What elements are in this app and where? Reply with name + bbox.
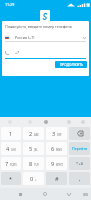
staticText: #: [55, 175, 59, 182]
staticText: 4: [6, 145, 10, 152]
button[interactable]: ,: [69, 172, 90, 185]
staticText: 9: [51, 160, 55, 167]
staticText: +7: [15, 50, 20, 55]
staticText: ПРОДОЛЖИТЬ: [60, 63, 83, 67]
staticText: ,: [79, 175, 81, 182]
button[interactable]: 4: [1, 142, 21, 155]
staticText: 5: [29, 145, 33, 152]
staticText: *+#: [76, 161, 84, 166]
button[interactable]: Home: [41, 190, 49, 198]
button[interactable]: 2: [23, 127, 44, 140]
button[interactable]: Backspace: [69, 127, 90, 140]
button[interactable]: Settings: [43, 119, 48, 124]
button[interactable]: Switch keyboard: [81, 190, 89, 198]
button[interactable]: +7: [2, 48, 89, 57]
staticText: JKL: [34, 148, 38, 152]
staticText: WXYZ: [56, 163, 63, 167]
staticText: PQRS: [10, 163, 17, 167]
button[interactable]: 9: [46, 157, 67, 170]
button[interactable]: 3: [46, 127, 67, 140]
button[interactable]: GIF: [27, 119, 32, 124]
staticText: 11:29: [5, 2, 15, 7]
staticText: Пожалуйста, введите номер телефона: [5, 24, 72, 29]
button[interactable]: 8: [23, 157, 44, 170]
staticText: Перейти: [72, 146, 88, 151]
button[interactable]: *+#: [69, 157, 90, 170]
staticText: +: [35, 178, 37, 182]
staticText: 3: [52, 130, 56, 137]
staticText: MNO: [56, 148, 63, 152]
staticText: TUV: [34, 163, 39, 167]
button[interactable]: Search: [66, 119, 71, 124]
staticText: 0: [30, 175, 34, 182]
button[interactable]: 5: [23, 142, 44, 155]
staticText: GHI: [11, 148, 16, 152]
button[interactable]: Recents: [16, 190, 24, 198]
button[interactable]: 7: [1, 157, 21, 170]
other: Backspace: [76, 131, 83, 136]
button[interactable]: *: [1, 172, 21, 185]
staticText: DEF: [57, 133, 62, 137]
staticText: 2: [29, 130, 33, 137]
staticText: 7: [5, 160, 9, 167]
button[interactable]: 1: [1, 127, 21, 140]
staticText: 6: [51, 145, 55, 152]
button[interactable]: Back: [65, 190, 73, 198]
staticText: ABC: [34, 133, 39, 137]
button[interactable]: #: [46, 172, 67, 185]
button[interactable]: Россия (+7): [2, 33, 89, 42]
button[interactable]: 0: [23, 172, 44, 185]
button[interactable]: ПРОДОЛЖИТЬ: [55, 61, 87, 68]
staticText: *: [9, 175, 13, 182]
staticText: 8: [29, 160, 33, 167]
staticText: Россия (+7): [15, 35, 35, 40]
button[interactable]: 6: [46, 142, 67, 155]
button[interactable]: Stickers: [7, 119, 12, 124]
button[interactable]: Перейти: [69, 142, 90, 155]
staticText: 1: [9, 130, 13, 137]
button[interactable]: More: [80, 119, 85, 124]
